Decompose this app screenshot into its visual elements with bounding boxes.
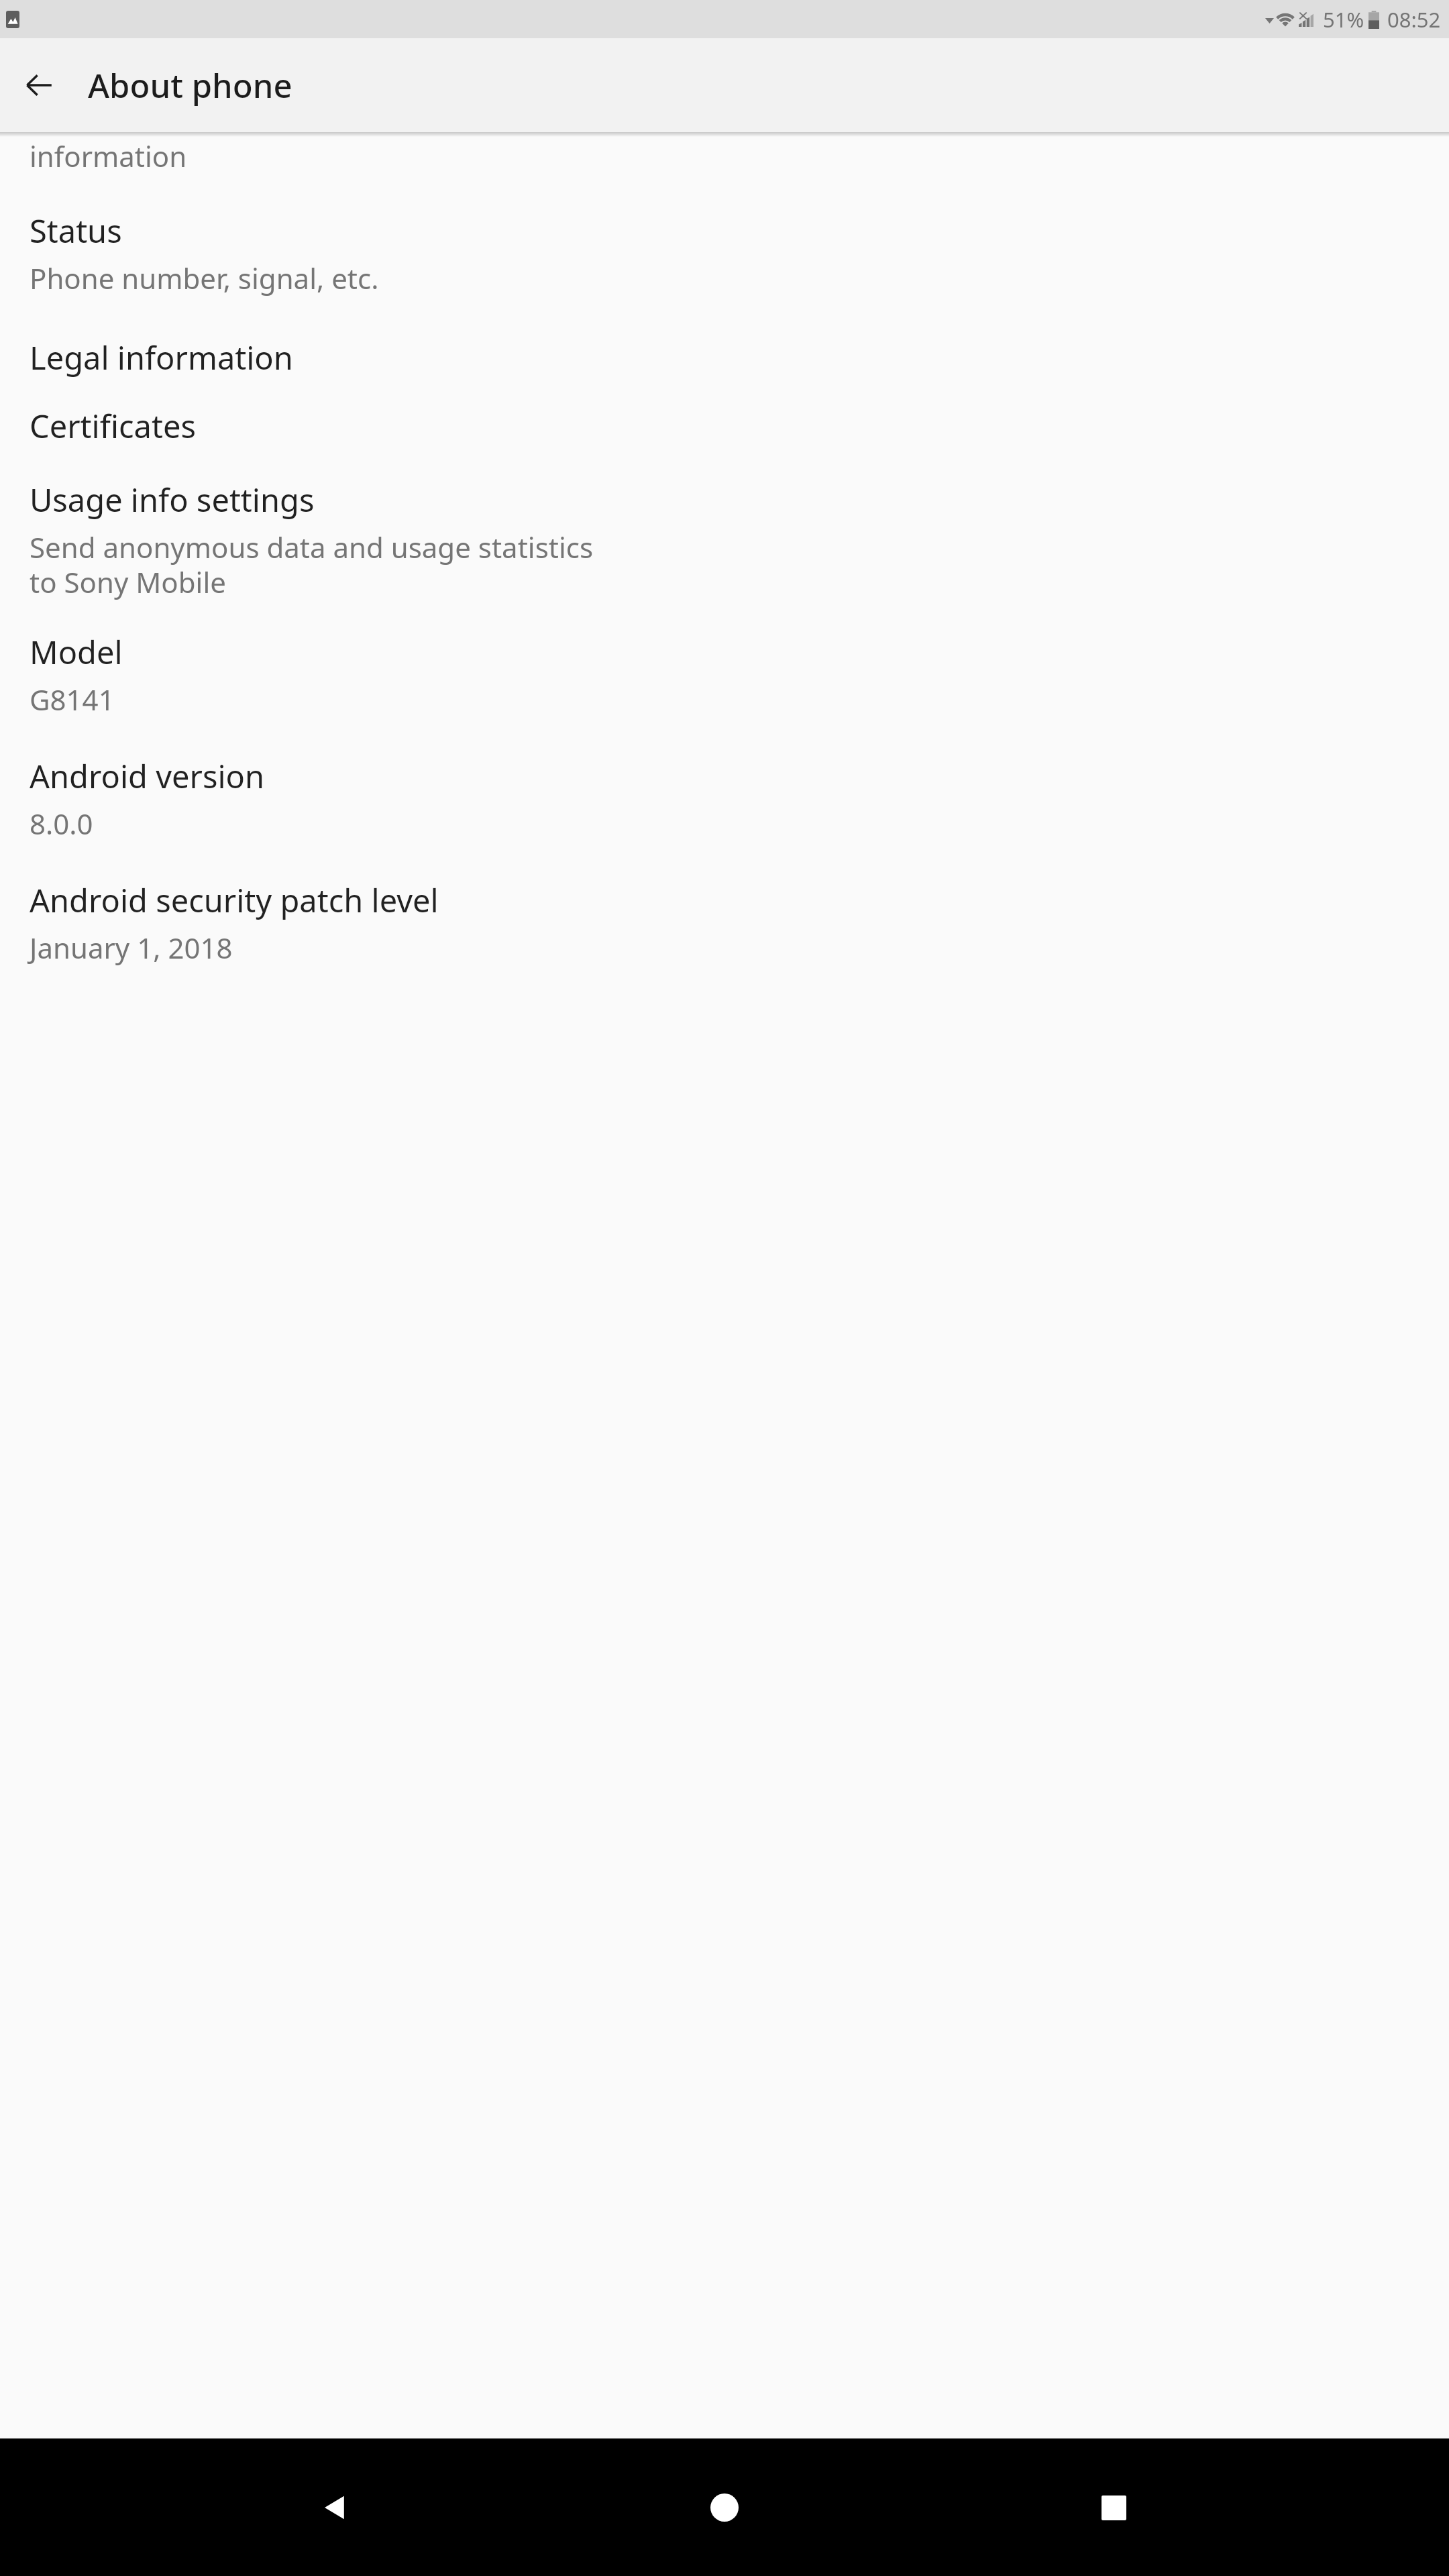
staticText: About phone [88,63,292,108]
button[interactable]: Status [0,177,1449,301]
button[interactable]: Legal information [0,301,1449,383]
button[interactable]: Recent apps [1060,2454,1167,2561]
button[interactable]: information [0,137,1449,177]
staticText: 8.0.0 [30,804,93,843]
button[interactable]: Model [0,605,1449,722]
staticText: Certificates [30,405,196,447]
staticText: Model [30,631,123,674]
staticText: Send anonymous data and usage statistics… [30,528,594,601]
staticText: 51% [1323,5,1364,34]
staticText: 08:52 [1387,5,1441,34]
staticText: information [30,137,187,175]
staticText: G8141 [30,680,115,718]
button[interactable]: Android version [0,722,1449,847]
staticText: January 1, 2018 [30,928,233,967]
staticText: Legal information [30,336,293,379]
staticText: Usage info settings [30,478,315,521]
staticText: Android version [30,755,265,798]
button[interactable]: Usage info settings [0,451,1449,605]
button[interactable]: Certificates [0,383,1449,451]
staticText: Android security patch level [30,879,439,922]
button[interactable]: Navigate up [20,66,58,104]
staticText: Phone number, signal, etc. [30,259,379,297]
button[interactable]: Back [282,2454,389,2561]
staticText: Status [30,209,122,252]
button[interactable]: Home [671,2454,778,2561]
button[interactable]: Android security patch level [0,847,1449,971]
